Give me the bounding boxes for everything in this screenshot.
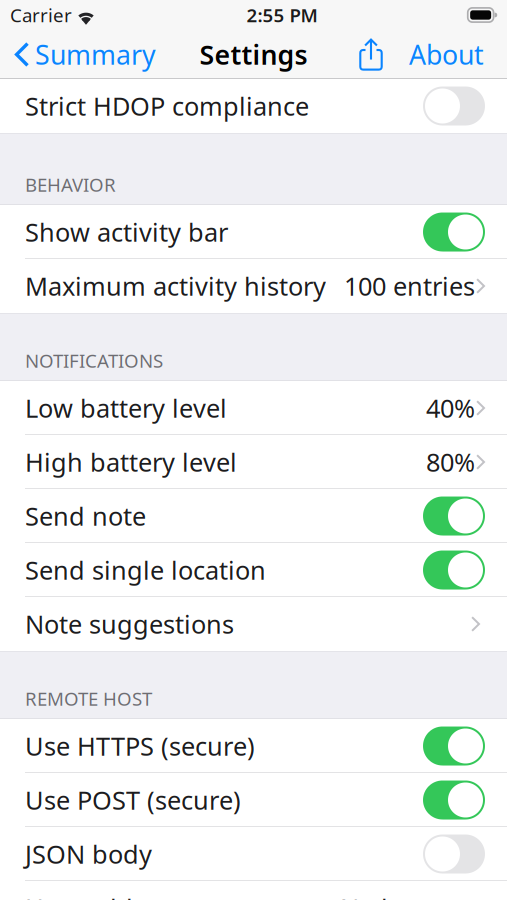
button[interactable]: Low battery level xyxy=(0,381,507,435)
button[interactable]: Host address xyxy=(0,881,507,900)
button[interactable]: Send note xyxy=(0,489,507,543)
staticText: 40% xyxy=(426,391,475,425)
staticText: JSON body xyxy=(25,837,152,871)
staticText: Show activity bar xyxy=(25,215,228,249)
staticText: No host set xyxy=(340,891,475,900)
button[interactable]: Maximum activity history xyxy=(0,259,507,313)
staticText: Send single location xyxy=(25,553,266,587)
staticText: High battery level xyxy=(25,445,237,479)
staticText: Settings xyxy=(199,37,307,72)
button[interactable]: Use POST (secure) xyxy=(0,773,507,827)
staticText: Summary xyxy=(35,37,156,72)
staticText: Strict HDOP compliance xyxy=(25,89,309,123)
staticText: Use HTTPS (secure) xyxy=(25,729,255,763)
staticText: 2:55 PM xyxy=(246,3,317,27)
staticText: 80% xyxy=(426,445,475,479)
button[interactable]: About xyxy=(391,30,507,79)
staticText: About xyxy=(409,37,484,72)
button[interactable]: Show activity bar xyxy=(0,205,507,259)
button[interactable]: Summary xyxy=(0,30,164,79)
button[interactable]: High battery level xyxy=(0,435,507,489)
staticText: NOTIFICATIONS xyxy=(25,348,163,373)
staticText: Low battery level xyxy=(25,391,227,425)
staticText: Send note xyxy=(25,499,146,533)
staticText: Carrier xyxy=(10,3,72,27)
button[interactable]: JSON body xyxy=(0,827,507,881)
staticText: REMOTE HOST xyxy=(25,686,152,711)
button[interactable]: Use HTTPS (secure) xyxy=(0,719,507,773)
staticText: Use POST (secure) xyxy=(25,783,241,817)
staticText: 100 entries xyxy=(344,269,475,303)
button[interactable]: Send single location xyxy=(0,543,507,597)
staticText: Note suggestions xyxy=(25,607,234,641)
staticText: Maximum activity history xyxy=(25,269,326,303)
button[interactable]: Strict HDOP compliance xyxy=(0,79,507,133)
button[interactable]: Share xyxy=(351,30,391,79)
staticText: Host address xyxy=(25,891,181,900)
staticText: BEHAVIOR xyxy=(25,172,116,197)
button[interactable]: Note suggestions xyxy=(0,597,507,651)
